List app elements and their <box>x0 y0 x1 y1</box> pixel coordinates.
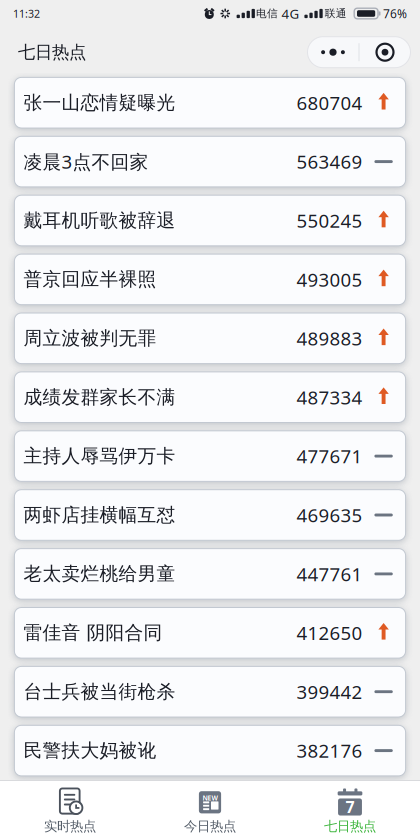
staticText: 399442 <box>297 679 363 704</box>
staticText: 4G <box>281 5 299 22</box>
button[interactable]: 成绩发群家长不满 <box>14 372 406 422</box>
button[interactable]: 老太卖烂桃给男童 <box>14 549 406 599</box>
staticText: 493005 <box>297 267 363 292</box>
button[interactable]: 实时热点 <box>0 780 140 840</box>
button[interactable]: 民警扶大妈被讹 <box>14 725 406 776</box>
button[interactable]: 凌晨3点不回家 <box>14 136 406 187</box>
staticText: 戴耳机听歌被辞退 <box>23 209 175 232</box>
staticText: 电信 <box>256 7 278 20</box>
staticText: 周立波被判无罪 <box>23 327 156 350</box>
button[interactable]: More options <box>307 37 358 68</box>
staticText: 412650 <box>297 620 363 645</box>
staticText: 雷佳音 阴阳合同 <box>23 621 162 644</box>
button[interactable]: 主持人辱骂伊万卡 <box>14 431 406 481</box>
staticText: 两虾店挂横幅互怼 <box>23 503 175 526</box>
staticText: 民警扶大妈被讹 <box>23 739 156 762</box>
staticText: 主持人辱骂伊万卡 <box>23 445 175 467</box>
staticText: 七日热点 <box>324 818 376 834</box>
staticText: 76% <box>383 5 407 21</box>
button[interactable]: 台士兵被当街枪杀 <box>14 666 406 717</box>
button[interactable]: NEW <box>140 780 280 840</box>
staticText: 469635 <box>297 503 363 527</box>
staticText: 七日热点 <box>18 42 86 63</box>
button[interactable]: 周立波被判无罪 <box>14 313 406 364</box>
staticText: 563469 <box>297 149 363 174</box>
button[interactable]: 戴耳机听歌被辞退 <box>14 195 406 246</box>
staticText: 447761 <box>297 561 363 586</box>
staticText: 普京回应半裸照 <box>23 268 156 291</box>
staticText: 成绩发群家长不满 <box>23 386 175 409</box>
staticText: 550245 <box>297 208 363 233</box>
staticText: 实时热点 <box>44 818 96 834</box>
staticText: NEW <box>202 793 217 802</box>
button[interactable]: Close mini program <box>359 37 410 68</box>
staticText: 382176 <box>297 738 363 763</box>
staticText: 7 <box>345 796 354 817</box>
staticText: 凌晨3点不回家 <box>23 149 148 174</box>
staticText: 张一山恋情疑曝光 <box>23 91 175 114</box>
button[interactable]: 7 <box>280 780 420 840</box>
staticText: 今日热点 <box>184 818 236 834</box>
staticText: 老太卖烂桃给男童 <box>23 562 175 585</box>
button[interactable]: 两虾店挂横幅互怼 <box>14 490 406 540</box>
staticText: 680704 <box>297 90 363 115</box>
staticText: 487334 <box>297 385 363 410</box>
button[interactable]: 普京回应半裸照 <box>14 254 406 305</box>
staticText: 477671 <box>297 444 363 468</box>
staticText: 联通 <box>325 7 347 20</box>
button[interactable]: 雷佳音 阴阳合同 <box>14 607 406 658</box>
staticText: 11:32 <box>13 6 40 21</box>
button[interactable]: 张一山恋情疑曝光 <box>14 77 406 128</box>
staticText: 台士兵被当街枪杀 <box>23 680 175 703</box>
staticText: 489883 <box>297 326 363 351</box>
